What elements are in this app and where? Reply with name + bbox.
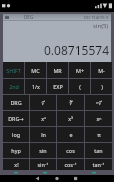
staticText: sin [39, 147, 47, 154]
staticText: xⁿ [96, 115, 102, 122]
button[interactable]: hyp [3, 143, 29, 158]
other: Status bar [0, 0, 114, 12]
staticText: tan⁻¹ [92, 161, 105, 168]
button[interactable]: log [3, 127, 29, 142]
button[interactable]: ) [91, 79, 112, 94]
button[interactable]: e [57, 127, 84, 142]
staticText: ln [41, 131, 46, 138]
staticText: ) [101, 83, 103, 90]
staticText: x² [41, 115, 46, 122]
staticText: √̅ [41, 100, 45, 106]
button[interactable]: SHIFT [3, 62, 24, 78]
button[interactable]: DEG [3, 14, 111, 20]
button[interactable]: √̅ [30, 95, 56, 110]
staticText: SHIFT [6, 67, 21, 74]
staticText: cos [66, 147, 75, 154]
button[interactable]: sin⁻¹ [30, 159, 56, 170]
button[interactable]: MR [47, 62, 68, 78]
staticText: EXP [53, 83, 63, 90]
staticText: ⁿ√̅ [96, 99, 102, 106]
staticText: MC [31, 67, 40, 74]
staticText: x³ [68, 115, 73, 122]
staticText: cos⁻¹ [64, 161, 77, 168]
staticText: ( [79, 83, 81, 90]
other: Navigation bar [0, 175, 114, 182]
button[interactable]: x² [30, 111, 56, 126]
button[interactable]: MC [25, 62, 46, 78]
button[interactable]: DRG [3, 95, 29, 110]
staticText: e [69, 131, 73, 138]
button[interactable]: M- [91, 62, 112, 78]
button[interactable]: EXP [47, 79, 68, 94]
staticText: DEG [24, 14, 34, 20]
button[interactable]: ∛̅ [57, 95, 84, 110]
staticText: 0.08715574 [44, 42, 109, 58]
staticText: DRG [10, 99, 22, 106]
button[interactable]: sin [30, 143, 56, 158]
staticText: sin⁻¹ [37, 161, 49, 168]
button[interactable]: DRG→ [3, 111, 29, 126]
staticText: M+ [76, 67, 84, 74]
staticText: π [97, 131, 101, 138]
button[interactable]: ln [30, 127, 56, 142]
staticText: log [12, 131, 20, 138]
button[interactable]: 1/x [25, 79, 46, 94]
staticText: hyp [11, 147, 21, 154]
button[interactable]: M+ [69, 62, 90, 78]
button[interactable]: π [85, 127, 112, 142]
staticText: ∛̅ [69, 100, 73, 106]
staticText: tan [94, 147, 103, 154]
button[interactable]: tan⁻¹ [85, 159, 112, 170]
button[interactable]: cos [57, 143, 84, 158]
staticText: 2nd [9, 83, 19, 90]
staticText: MR [53, 67, 62, 74]
button[interactable]: cos⁻¹ [57, 159, 84, 170]
button[interactable]: ( [69, 79, 90, 94]
staticText: 1/x [32, 83, 40, 90]
staticText: M- [98, 67, 105, 74]
staticText: DRG→ [8, 115, 24, 122]
button[interactable]: tan [85, 143, 112, 158]
button[interactable]: 2nd [3, 79, 24, 94]
button[interactable]: x! [3, 159, 29, 170]
staticText: sin(5) [93, 22, 109, 30]
button[interactable]: xⁿ [85, 111, 112, 126]
button[interactable]: ⁿ√̅ [85, 95, 112, 110]
button[interactable]: x³ [57, 111, 84, 126]
staticText: DEC PLACES: 8 [84, 15, 109, 20]
staticText: x! [14, 161, 19, 168]
